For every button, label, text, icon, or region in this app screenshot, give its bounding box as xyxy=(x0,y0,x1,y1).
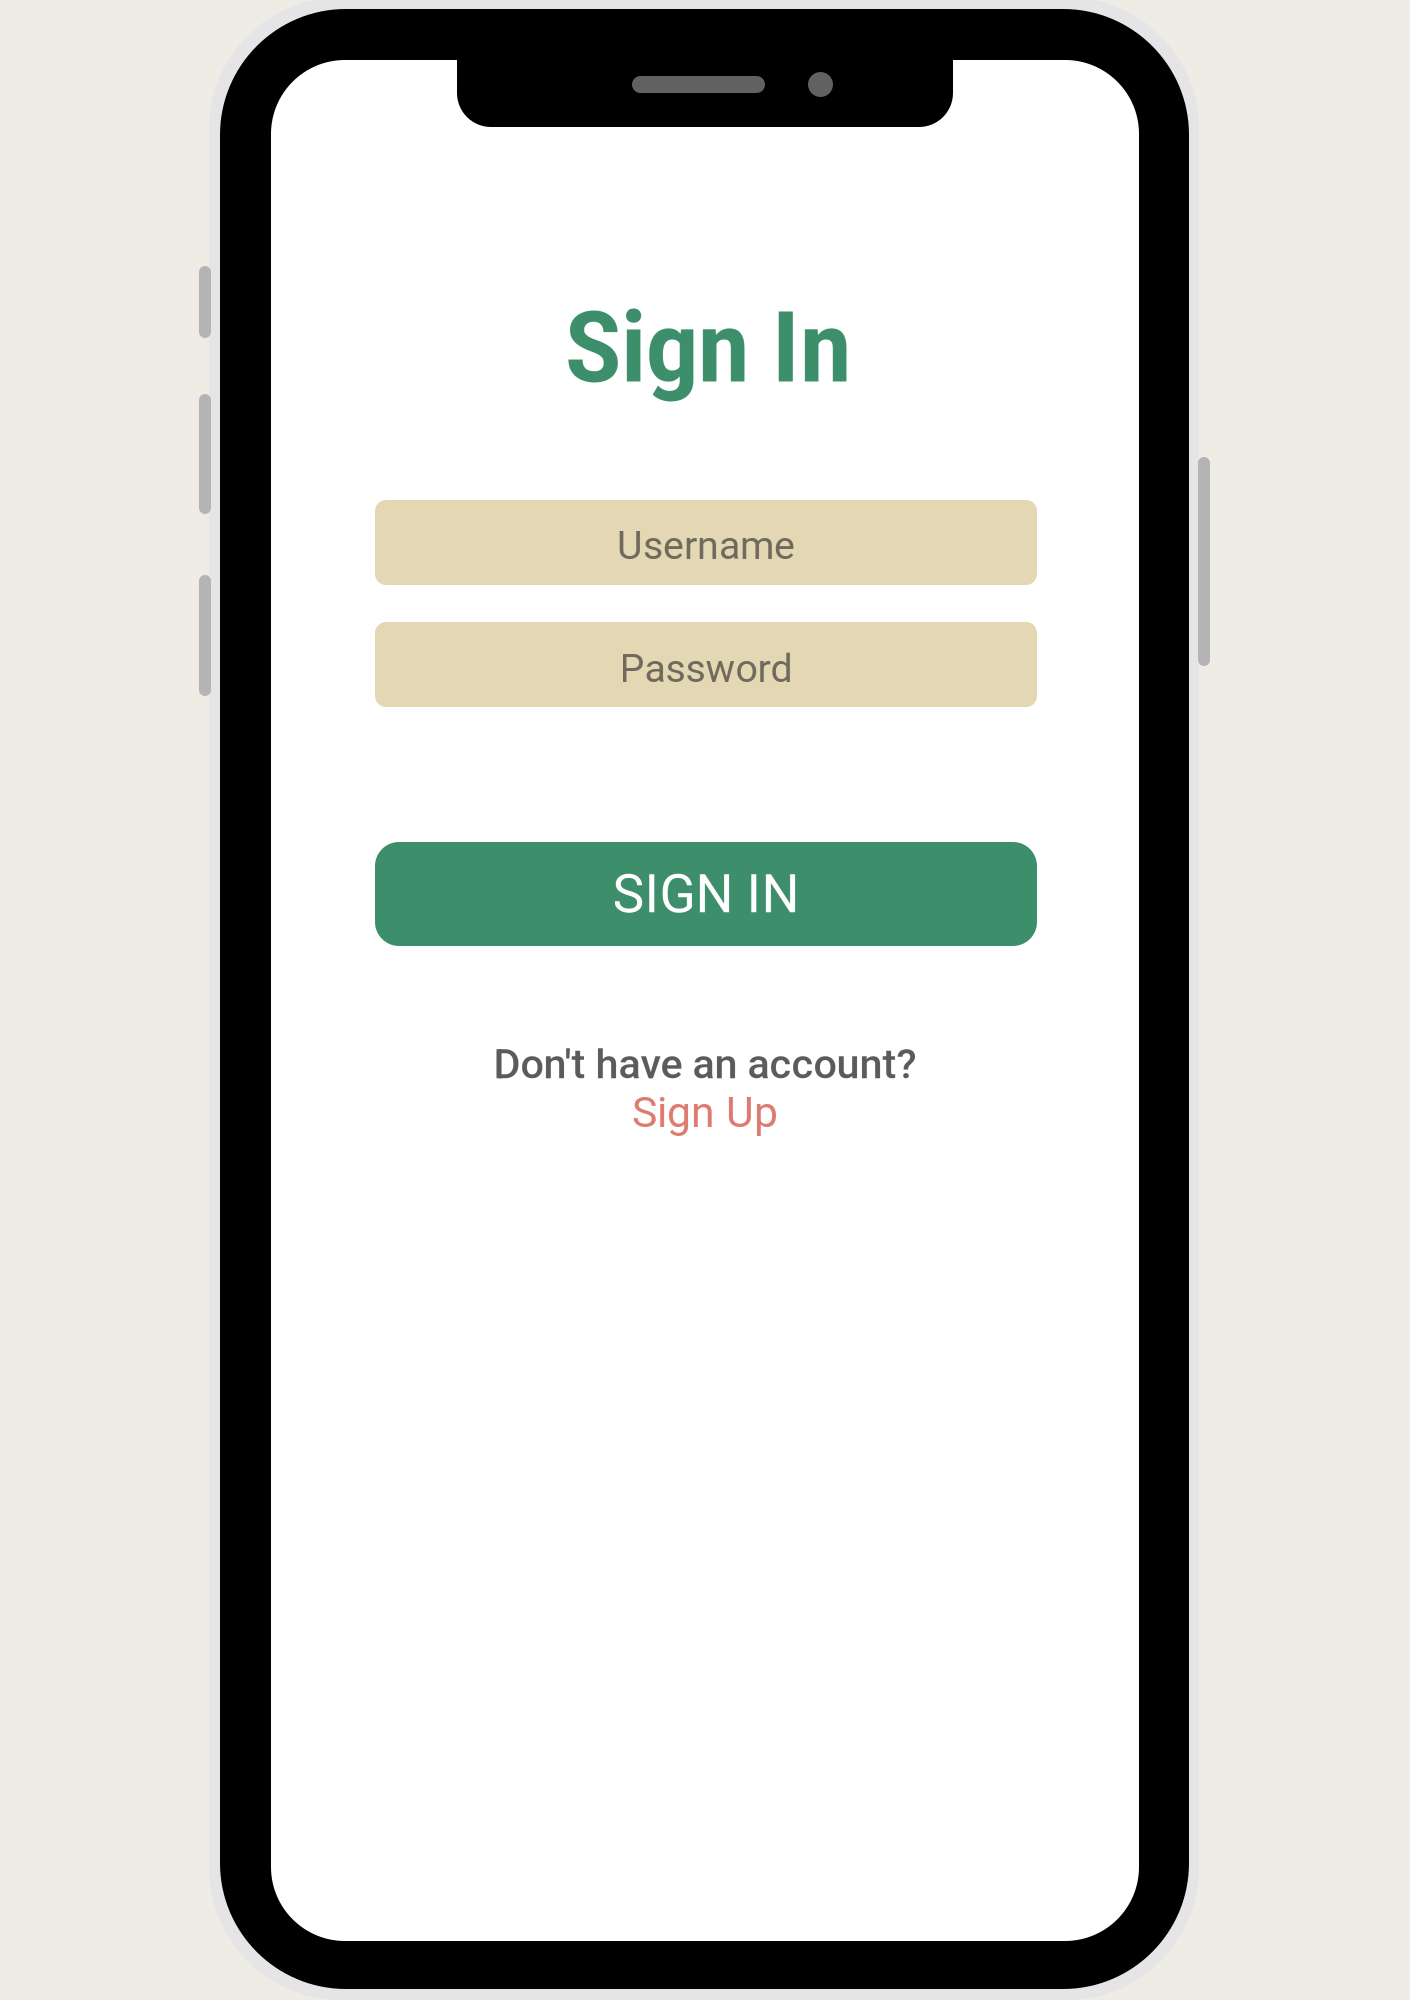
staticText: Password xyxy=(619,645,792,692)
button[interactable]: Volume up xyxy=(199,394,211,514)
staticText: Username xyxy=(617,522,795,569)
staticText: Don't have an account? xyxy=(493,1040,916,1088)
button[interactable]: Sign Up xyxy=(605,1089,805,1135)
button[interactable]: Side button xyxy=(1198,457,1210,666)
button[interactable]: SIGN IN xyxy=(375,842,1037,946)
button[interactable]: Volume down xyxy=(199,575,211,696)
staticText: SIGN IN xyxy=(612,863,799,925)
staticText: Sign In xyxy=(565,291,851,405)
button[interactable]: Password xyxy=(375,622,1037,707)
button[interactable]: Silent switch xyxy=(199,266,211,338)
button[interactable]: Username xyxy=(375,500,1037,585)
staticText: Sign Up xyxy=(632,1087,778,1137)
